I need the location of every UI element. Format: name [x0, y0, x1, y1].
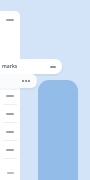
button[interactable]: More options — [0, 74, 37, 88]
button[interactable] — [38, 80, 78, 180]
staticText: marks — [2, 63, 18, 70]
button[interactable] — [0, 11, 20, 29]
button[interactable] — [0, 141, 20, 158]
button[interactable]: marks — [0, 59, 62, 74]
button[interactable] — [0, 105, 20, 122]
button[interactable] — [0, 123, 20, 140]
button[interactable] — [0, 87, 20, 104]
